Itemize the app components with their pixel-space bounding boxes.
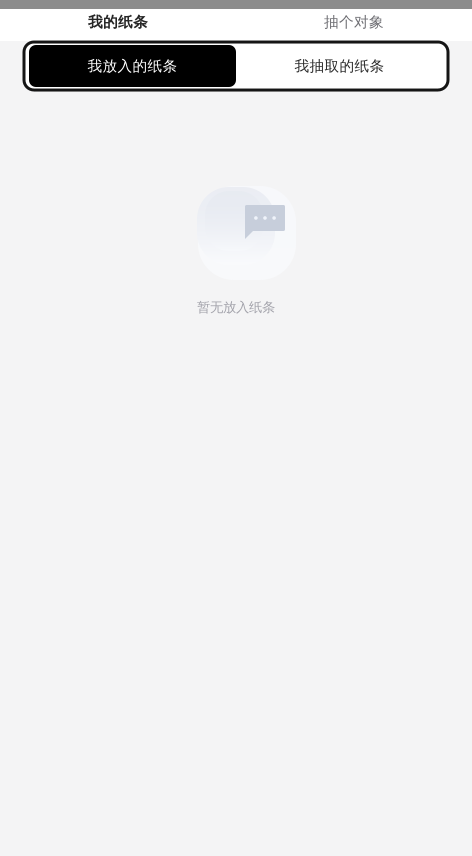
button[interactable]: 抽个对象 <box>236 9 472 41</box>
button[interactable]: 我放入的纸条 <box>29 45 236 87</box>
staticText: 我放入的纸条 <box>87 57 177 75</box>
staticText: 暂无放入纸条 <box>197 299 275 315</box>
staticText: 我抽取的纸条 <box>294 57 384 75</box>
staticText: 我的纸条 <box>88 13 148 31</box>
button[interactable]: 我抽取的纸条 <box>236 45 443 87</box>
staticText: 抽个对象 <box>324 13 384 31</box>
button[interactable]: 我的纸条 <box>0 9 236 41</box>
